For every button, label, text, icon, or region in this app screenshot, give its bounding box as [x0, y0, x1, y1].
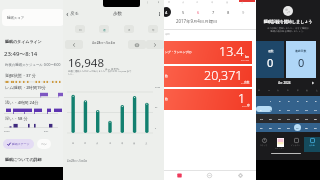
button[interactable]: 4 — [164, 7, 171, 17]
staticText: 9/4 9:12 — [242, 105, 250, 108]
button[interactable]: 15 — [266, 114, 275, 123]
button[interactable]: 19 — [302, 114, 311, 123]
staticText: 覚醒状態・37 分 — [5, 73, 37, 79]
button[interactable]: Health — [194, 170, 225, 180]
staticText: ▯ — [147, 1, 149, 4]
button[interactable]: 8 — [224, 7, 232, 17]
button[interactable]: 11 — [293, 105, 302, 114]
staticText: ベン — [41, 142, 47, 146]
button[interactable]: 22 — [266, 123, 275, 132]
button[interactable]: 週 — [99, 25, 109, 33]
button[interactable]: Next month — [311, 81, 315, 85]
button[interactable]: その他 — [304, 137, 320, 152]
button[interactable]: 7 — [256, 105, 266, 114]
staticText: 水 — [196, 1, 199, 4]
button[interactable]: 戻る — [63, 9, 82, 19]
staticText: 歩 (1 日平均) — [105, 67, 120, 70]
button[interactable]: 年 — [148, 25, 158, 33]
button[interactable]: 5 — [302, 96, 311, 105]
button[interactable]: 3 — [284, 96, 293, 105]
button[interactable]: 17 — [284, 114, 293, 123]
staticText: 木 — [211, 1, 214, 4]
button[interactable]: 7 — [209, 7, 217, 17]
staticText: 13.4 — [219, 43, 244, 60]
button[interactable]: 21 — [256, 123, 266, 132]
button[interactable]: 日 — [75, 25, 85, 33]
button[interactable]: ステップ — [256, 137, 272, 152]
button[interactable]: 16 — [275, 114, 284, 123]
button[interactable]: 6 — [311, 96, 320, 105]
button[interactable]: 14 — [256, 114, 266, 123]
button[interactable]: 6 — [194, 7, 202, 17]
staticText: 8:07 — [44, 130, 49, 133]
staticText: 睡眠記録を開始しましょう — [257, 19, 319, 24]
staticText: 22 — [269, 126, 272, 129]
button[interactable]: 26 — [302, 123, 311, 132]
button[interactable]: Next week — [146, 40, 164, 49]
button[interactable]: 25 — [293, 123, 302, 132]
staticText: 7 — [260, 108, 262, 111]
staticText: 階 — [247, 103, 250, 106]
button[interactable]: 連続日数 — [286, 41, 316, 78]
staticText: 睡眠についての詳細 — [5, 157, 42, 162]
staticText: 16,948 — [68, 55, 104, 71]
button[interactable]: 9 — [239, 7, 247, 17]
button[interactable]: 12 — [302, 105, 311, 114]
button[interactable]: ング・ランニングの — [164, 41, 252, 64]
button[interactable]: カレンダー — [272, 137, 288, 152]
staticText: 年 — [152, 28, 155, 31]
button[interactable]: ベン — [37, 139, 51, 149]
staticText: 日 — [258, 89, 260, 91]
button[interactable]: 9 — [275, 105, 284, 114]
button[interactable]: 8 — [266, 105, 275, 114]
button[interactable]: 睡眠スコア — [2, 9, 63, 26]
button[interactable]: More options — [155, 9, 164, 19]
button[interactable]: 18 — [293, 114, 302, 123]
button[interactable]: Settings — [225, 170, 256, 180]
button[interactable]: 13 — [311, 105, 320, 114]
button[interactable]: 10 — [284, 105, 293, 114]
staticText: 浅い・4時間 24分 — [5, 100, 39, 106]
button[interactable]: 週数 — [256, 41, 284, 78]
button[interactable]: Summary — [164, 170, 194, 180]
staticText: 4月 2024 — [278, 81, 291, 85]
button[interactable]: 4 — [293, 96, 302, 105]
staticText: 6 — [315, 99, 317, 102]
staticText: 土 — [241, 1, 244, 4]
staticText: 9 — [279, 108, 281, 111]
staticText: 24 — [287, 126, 290, 129]
button[interactable]: 20 — [311, 114, 320, 123]
button[interactable]: 睡眠ステージ — [3, 139, 34, 149]
button[interactable]: 2 — [275, 96, 284, 105]
staticText: レム睡眠・2時間19分 — [5, 85, 46, 91]
staticText: 水 — [109, 142, 112, 145]
button[interactable]: 1 — [266, 96, 275, 105]
staticText: 20,371 — [204, 67, 243, 84]
staticText: 27 — [314, 126, 317, 129]
staticText: 金 — [133, 142, 136, 145]
staticText: 9/4 19:44 — [241, 59, 250, 62]
staticText: 月 — [168, 1, 171, 4]
button[interactable]: インサイト — [288, 137, 304, 152]
button[interactable]: 数 — [164, 89, 252, 110]
button[interactable]: 24 — [284, 123, 293, 132]
staticText: 歩数 — [113, 11, 123, 17]
button[interactable]: 27 — [311, 123, 320, 132]
button[interactable]: Previous week — [65, 40, 83, 49]
staticText: 土 — [145, 142, 148, 145]
button[interactable]: 5 — [179, 7, 187, 17]
staticText: 火 — [277, 89, 279, 91]
staticText: 連続日数 — [295, 49, 307, 53]
button[interactable]: 23 — [275, 123, 284, 132]
staticText: 金 — [226, 1, 229, 4]
staticText: 先週に運動した日が 6 日ありました。合計は約 118,636 歩で した。 — [68, 70, 164, 76]
button[interactable]: 数 — [164, 66, 252, 87]
staticText: 4 — [297, 99, 299, 102]
button[interactable]: 月 — [124, 25, 134, 33]
staticText: 深い・58 分 — [5, 116, 28, 122]
staticText: 木 — [121, 142, 124, 145]
button[interactable]: Pick date — [128, 40, 146, 49]
staticText: 16 — [278, 117, 281, 120]
staticText: 睡眠ステージ — [12, 142, 30, 146]
